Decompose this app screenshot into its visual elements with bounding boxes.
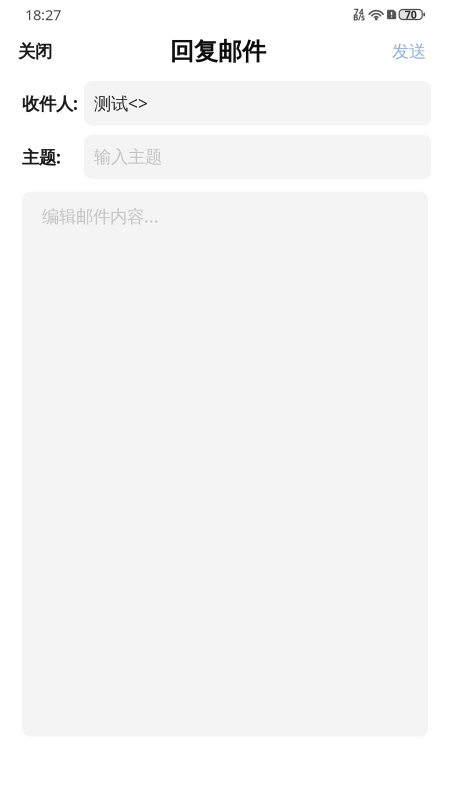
staticText: 测试<> bbox=[94, 92, 148, 115]
staticText: 输入主题 bbox=[94, 146, 162, 168]
staticText: 回复邮件 bbox=[170, 37, 266, 66]
staticText: 70 bbox=[405, 7, 417, 22]
button[interactable]: 发送 bbox=[386, 31, 432, 68]
staticText: 关闭 bbox=[18, 41, 52, 62]
staticText: 编辑邮件内容... bbox=[42, 205, 159, 228]
button[interactable]: 输入主题 bbox=[84, 135, 431, 179]
button[interactable]: 关闭 bbox=[12, 31, 58, 68]
button[interactable]: 测试<> bbox=[84, 81, 431, 126]
staticText: 18:27 bbox=[25, 5, 61, 24]
staticText: 发送 bbox=[392, 41, 426, 62]
staticText: 主题: bbox=[22, 145, 61, 168]
staticText: B/s bbox=[353, 12, 365, 23]
staticText: 74 bbox=[354, 6, 364, 17]
staticText: 收件人: bbox=[22, 92, 78, 115]
